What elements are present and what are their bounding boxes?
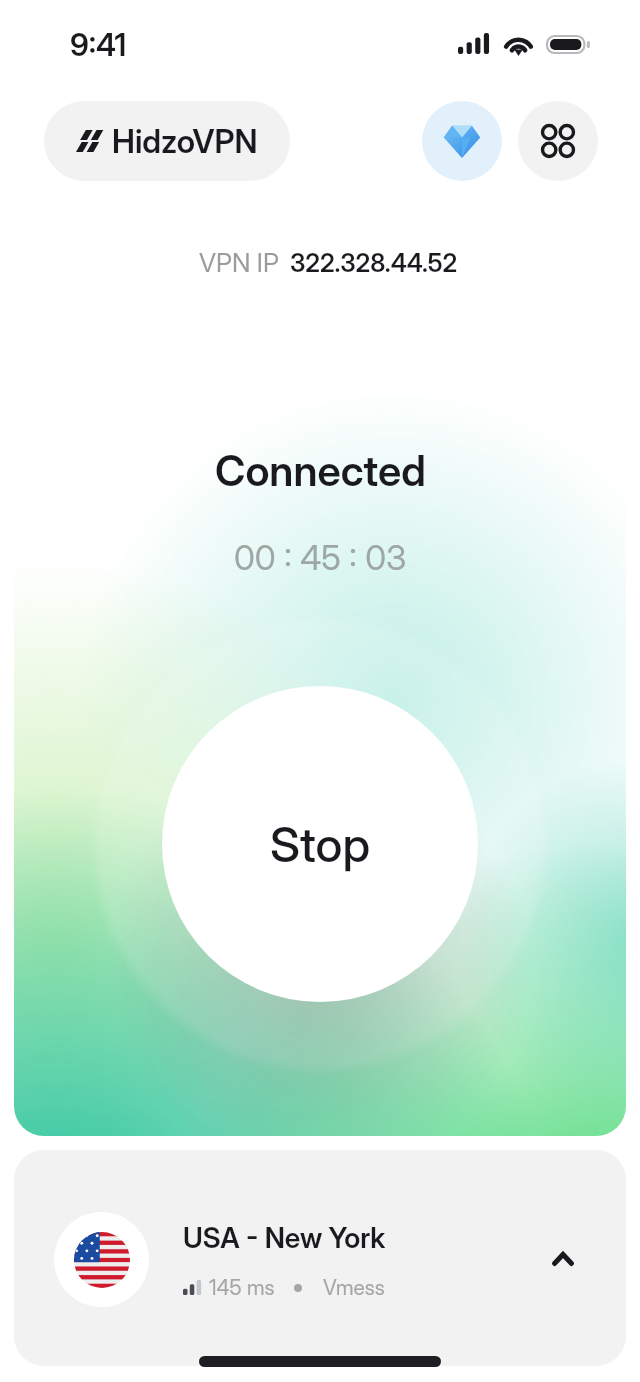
staticText: 9:41 (70, 26, 127, 64)
staticText: Vmess (323, 1275, 385, 1300)
staticText: 322.328.44.52 (290, 248, 458, 278)
button[interactable]: USA - New York (14, 1150, 626, 1366)
staticText: 145 ms (209, 1275, 275, 1300)
staticText: VPN IP (199, 247, 279, 278)
staticText: HidzoVPN (112, 122, 258, 161)
button[interactable]: Expand server list (533, 1229, 593, 1289)
staticText: Connected (215, 445, 426, 496)
staticText: USA - New York (183, 1221, 386, 1255)
staticText: 00 : 45 : 03 (234, 537, 407, 578)
button[interactable]: Apps (518, 101, 598, 181)
staticText: Stop (270, 815, 371, 873)
button[interactable]: Premium (422, 101, 502, 181)
button[interactable]: Stop (162, 686, 478, 1002)
button[interactable]: HidzoVPN (44, 101, 290, 181)
